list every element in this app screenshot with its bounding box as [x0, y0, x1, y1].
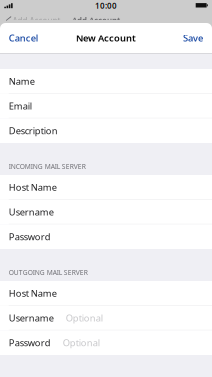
- button[interactable]: Name: [0, 69, 212, 94]
- staticText: Password: [9, 230, 51, 243]
- staticText: Save: [183, 32, 203, 44]
- button[interactable]: Password: [0, 224, 212, 249]
- staticText: Password: [9, 336, 51, 349]
- button[interactable]: Description: [0, 118, 212, 143]
- staticText: Email: [9, 100, 32, 112]
- button[interactable]: Username: [0, 306, 212, 330]
- staticText: INCOMING MAIL SERVER: [9, 162, 86, 171]
- staticText: 10:00: [95, 0, 117, 11]
- staticText: Host Name: [9, 181, 57, 193]
- staticText: Cancel: [9, 32, 39, 44]
- button[interactable]: Password: [0, 330, 212, 355]
- staticText: OUTGOING MAIL SERVER: [9, 268, 88, 277]
- staticText: Host Name: [9, 287, 57, 299]
- button[interactable]: Save: [176, 23, 212, 53]
- staticText: Add Account: [13, 15, 61, 26]
- staticText: Username: [9, 206, 54, 218]
- button[interactable]: Cancel: [0, 23, 46, 53]
- staticText: New Account: [76, 32, 136, 44]
- staticText: Optional: [63, 336, 100, 349]
- staticText: Add Account: [72, 15, 120, 26]
- button[interactable]: Host Name: [0, 281, 212, 306]
- button[interactable]: Email: [0, 94, 212, 118]
- staticText: Name: [9, 75, 35, 87]
- button[interactable]: Username: [0, 200, 212, 224]
- staticText: Optional: [66, 312, 103, 324]
- staticText: Username: [9, 312, 54, 324]
- staticText: Description: [9, 124, 58, 137]
- button[interactable]: Host Name: [0, 175, 212, 200]
